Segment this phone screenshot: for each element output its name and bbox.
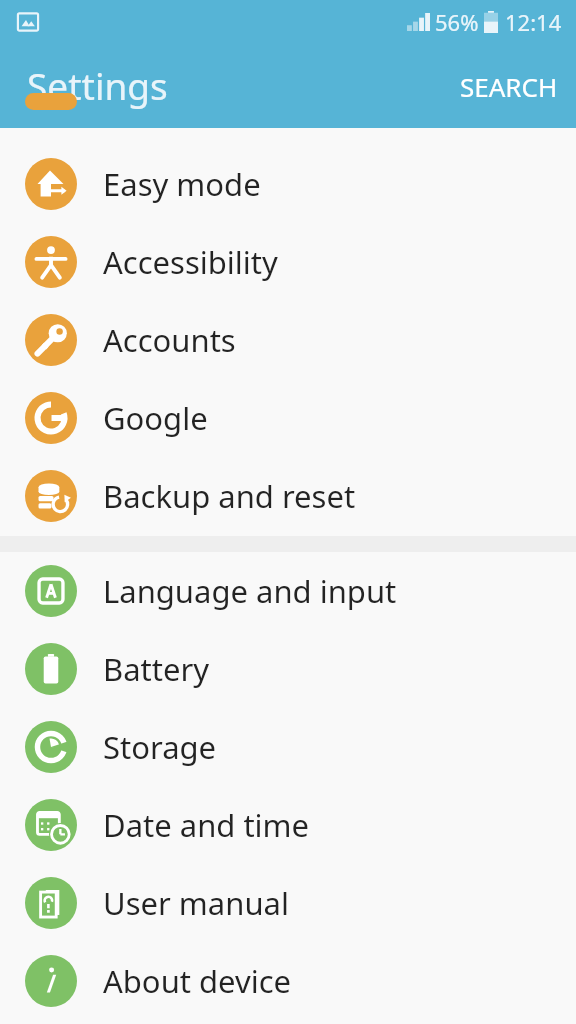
button[interactable]: Accounts — [0, 301, 576, 379]
button[interactable]: Language and input — [0, 552, 576, 630]
button[interactable]: Storage — [0, 708, 576, 786]
button[interactable]: Backup and reset — [0, 457, 576, 535]
button[interactable]: Easy mode — [0, 145, 576, 223]
staticText: SEARCH — [460, 69, 558, 104]
button[interactable]: About device — [0, 942, 576, 1020]
staticText: 12:14 — [505, 7, 562, 37]
staticText: Storage — [103, 726, 217, 768]
staticText: Accessibility — [103, 241, 278, 283]
button[interactable]: Battery — [0, 630, 576, 708]
staticText: Settings — [27, 60, 168, 110]
staticText: Accounts — [103, 319, 236, 361]
staticText: Date and time — [103, 804, 310, 846]
staticText: Language and input — [103, 570, 397, 612]
staticText: 56% — [435, 7, 479, 37]
button[interactable]: User manual — [0, 864, 576, 942]
staticText: Google — [103, 397, 208, 439]
button[interactable]: Google — [0, 379, 576, 457]
staticText: About device — [103, 960, 292, 1002]
button[interactable]: Date and time — [0, 786, 576, 864]
staticText: Battery — [103, 648, 210, 690]
staticText: User manual — [103, 882, 289, 924]
staticText: Easy mode — [103, 163, 261, 205]
button[interactable]: Accessibility — [0, 223, 576, 301]
staticText: Backup and reset — [103, 475, 356, 517]
button[interactable]: SEARCH — [442, 55, 576, 118]
